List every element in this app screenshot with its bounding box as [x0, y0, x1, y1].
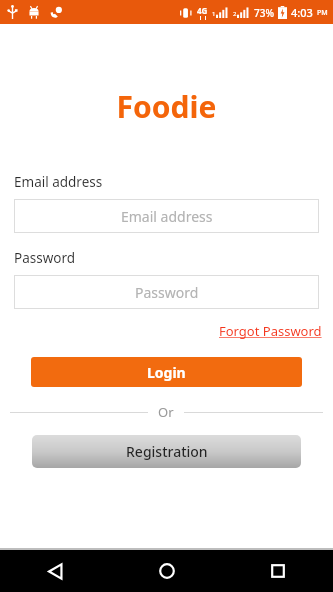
button[interactable]: Login: [31, 357, 302, 387]
staticText: 1: [212, 10, 216, 18]
button[interactable]: Forgot Password: [208, 319, 333, 343]
button[interactable]: Home: [111, 550, 222, 592]
staticText: Email address: [121, 207, 213, 226]
staticText: 73%: [254, 6, 274, 20]
staticText: Login: [147, 363, 186, 382]
staticText: Registration: [126, 442, 208, 461]
staticText: Email address: [14, 173, 103, 191]
staticText: 4G: [197, 5, 208, 16]
staticText: 2: [233, 10, 237, 18]
staticText: Password: [135, 283, 199, 302]
button[interactable]: Recents: [222, 550, 333, 592]
staticText: Foodie: [0, 86, 333, 127]
button[interactable]: Password: [14, 275, 319, 309]
staticText: Password: [14, 249, 76, 267]
staticText: PM: [317, 8, 328, 18]
staticText: Or: [158, 403, 174, 421]
staticText: 4:03: [291, 5, 313, 20]
button[interactable]: Back: [0, 550, 111, 592]
button[interactable]: Email address: [14, 199, 319, 233]
button[interactable]: Registration: [32, 435, 301, 468]
